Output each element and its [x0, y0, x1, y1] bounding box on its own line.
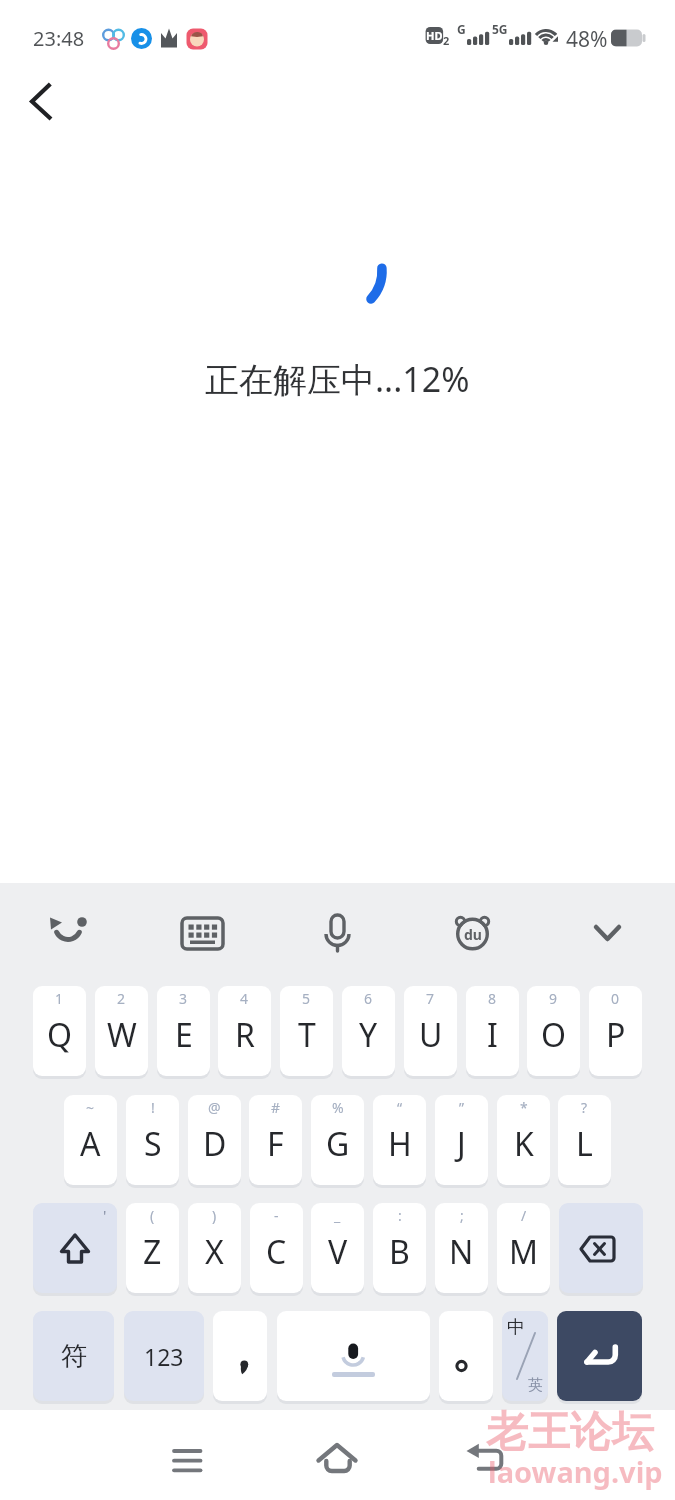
button[interactable]: 123 [124, 1311, 204, 1401]
staticText: du [464, 925, 482, 944]
staticText: 6 [364, 989, 373, 1008]
button[interactable]: : [373, 1203, 426, 1293]
button[interactable]: 4 [218, 986, 271, 1076]
staticText: F [267, 1122, 284, 1166]
staticText: U [419, 1013, 443, 1057]
staticText: HD [426, 28, 443, 43]
button[interactable]: ! [126, 1095, 179, 1185]
staticText: G [457, 21, 466, 37]
staticText: ~ [86, 1098, 95, 1117]
staticText: / [521, 1206, 527, 1225]
staticText: X [205, 1230, 224, 1274]
staticText: ) [212, 1206, 217, 1225]
staticText: 48% [566, 25, 608, 54]
button[interactable]: 9 [527, 986, 580, 1076]
button[interactable]: % [311, 1095, 364, 1185]
staticText: C [266, 1230, 287, 1274]
staticText: G [326, 1122, 350, 1166]
button[interactable] [557, 1311, 642, 1401]
staticText: N [449, 1230, 474, 1274]
button[interactable]: 2 [95, 986, 148, 1076]
staticText: L [576, 1122, 593, 1166]
staticText: ! [151, 1098, 155, 1117]
button[interactable]: 3 [157, 986, 210, 1076]
staticText: 0 [611, 989, 620, 1008]
button[interactable]: / [497, 1203, 550, 1293]
staticText: 5 [302, 989, 311, 1008]
staticText: ? [581, 1098, 588, 1117]
staticText: ” [459, 1098, 465, 1117]
button[interactable]: ( [126, 1203, 179, 1293]
staticText: P [606, 1013, 626, 1057]
button[interactable] [439, 1311, 493, 1401]
staticText: R [235, 1013, 255, 1057]
button[interactable]: ' [33, 1203, 117, 1293]
button[interactable]: - [250, 1203, 303, 1293]
button[interactable]: “ [373, 1095, 426, 1185]
staticText: H [388, 1122, 412, 1166]
button[interactable]: 0 [589, 986, 642, 1076]
staticText: “ [397, 1098, 403, 1117]
staticText: S [144, 1122, 162, 1166]
staticText: 8 [488, 989, 497, 1008]
staticText: 2 [443, 33, 450, 48]
button[interactable]: _ [311, 1203, 364, 1293]
staticText: laowang.vip [488, 1452, 663, 1491]
button[interactable] [277, 1311, 430, 1401]
button[interactable]: ) [188, 1203, 241, 1293]
button[interactable]: 6 [342, 986, 395, 1076]
staticText: 4 [240, 989, 249, 1008]
staticText: 老王论坛 [486, 1406, 654, 1459]
button[interactable]: * [497, 1095, 550, 1185]
staticText: * [520, 1098, 528, 1117]
staticText: # [271, 1098, 281, 1117]
staticText: 正在解压中...12% [205, 356, 470, 400]
staticText: @ [208, 1098, 221, 1117]
staticText: 9 [549, 989, 558, 1008]
staticText: 2 [117, 989, 126, 1008]
staticText: - [274, 1206, 279, 1225]
button[interactable]: @ [188, 1095, 241, 1185]
button[interactable]: # [249, 1095, 302, 1185]
button[interactable]: ” [435, 1095, 488, 1185]
button[interactable] [213, 1311, 267, 1401]
staticText: 1 [55, 989, 64, 1008]
staticText: B [389, 1230, 410, 1274]
staticText: O [541, 1013, 566, 1057]
staticText: 中 [507, 1316, 525, 1339]
staticText: 5G [492, 21, 508, 37]
button[interactable]: 7 [404, 986, 457, 1076]
staticText: M [509, 1230, 539, 1274]
button[interactable] [559, 1203, 643, 1293]
staticText: J [457, 1122, 466, 1166]
button[interactable]: 5 [280, 986, 333, 1076]
button[interactable]: ; [435, 1203, 488, 1293]
staticText: D [203, 1122, 227, 1166]
staticText: E [175, 1013, 193, 1057]
staticText: ' [103, 1205, 107, 1225]
button[interactable]: 符 [33, 1311, 114, 1401]
staticText: I [487, 1013, 498, 1057]
staticText: T [298, 1013, 316, 1057]
staticText: ( [150, 1206, 155, 1225]
staticText: K [514, 1122, 534, 1166]
staticText: 7 [426, 989, 435, 1008]
button[interactable]: 中 [502, 1311, 548, 1401]
button[interactable]: 1 [33, 986, 86, 1076]
staticText: V [328, 1230, 348, 1274]
button[interactable]: ? [558, 1095, 611, 1185]
staticText: 123 [144, 1341, 184, 1372]
staticText: _ [334, 1206, 341, 1225]
staticText: % [332, 1098, 344, 1117]
staticText: 23:48 [33, 25, 85, 52]
staticText: Q [47, 1013, 72, 1057]
button[interactable]: ~ [64, 1095, 117, 1185]
button[interactable]: 8 [466, 986, 519, 1076]
staticText: : [398, 1206, 402, 1225]
staticText: A [80, 1122, 101, 1166]
staticText: 符 [61, 1340, 87, 1373]
staticText: Y [359, 1013, 378, 1057]
staticText: 3 [179, 989, 188, 1008]
staticText: 英 [528, 1376, 543, 1395]
staticText: W [107, 1013, 137, 1057]
